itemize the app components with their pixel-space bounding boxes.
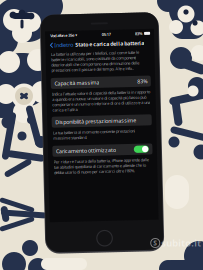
staticText: Stato e carica della batteria	[77, 40, 146, 48]
button[interactable]: Indietro	[47, 39, 77, 49]
staticText: 83%	[138, 79, 148, 86]
staticText: Capacità massima	[56, 79, 101, 86]
staticText: La batteria utilizzata per i telefoni, c…	[53, 50, 141, 72]
button[interactable]: Caricamento ottimizzato	[47, 145, 156, 156]
staticText: Indietro	[56, 40, 75, 48]
staticText: ▾	[76, 32, 79, 37]
staticText: 05:17	[104, 32, 113, 37]
staticText: Per ridurre l'usura della batteria, iPho…	[53, 158, 148, 174]
staticText: Disponibilità prestazioni massime	[56, 117, 137, 125]
staticText: Indica l'attuale valore di capacità dell…	[53, 90, 151, 111]
staticText: S	[153, 239, 157, 247]
staticText: 83%	[137, 32, 145, 37]
button[interactable]: Capacità massima	[47, 77, 156, 88]
staticText: subito.it	[161, 237, 201, 249]
button[interactable]: Disponibilità prestazioni massime	[47, 115, 156, 126]
staticText: Vodafone 35e	[52, 32, 76, 37]
staticText: Caricamento ottimizzato	[56, 147, 116, 154]
staticText: La tua batteria al momento consente pres…	[53, 129, 135, 140]
